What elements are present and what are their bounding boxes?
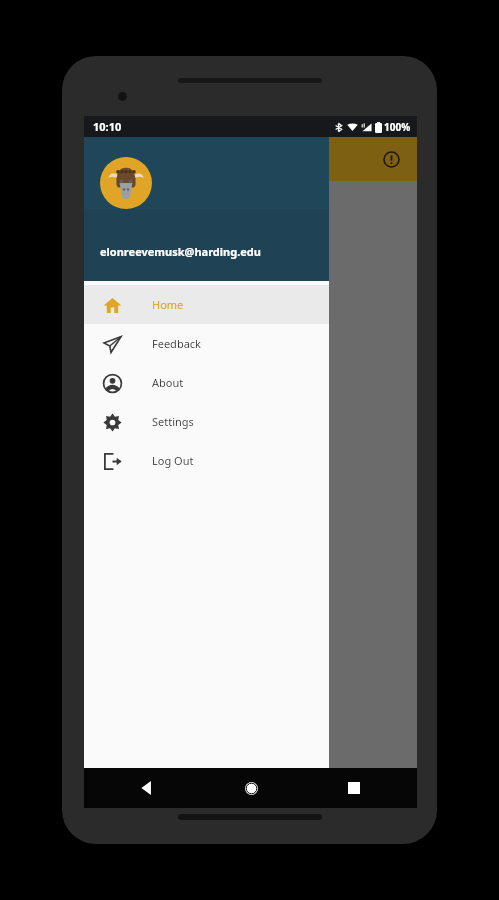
button[interactable]: Recent apps [339, 773, 369, 803]
button[interactable]: Home [84, 285, 329, 324]
staticText: Log Out [152, 453, 194, 468]
staticText: Settings [152, 414, 194, 429]
button[interactable]: Back [132, 773, 162, 803]
staticText: 10:10 [93, 119, 122, 134]
staticText: elonreevemusk@harding.edu [100, 244, 261, 259]
button[interactable]: Alerts [377, 145, 405, 173]
button[interactable]: Profile photo [100, 157, 152, 209]
button[interactable]: Home [236, 773, 266, 803]
staticText: Feedback [152, 336, 201, 351]
staticText: 100% [384, 120, 411, 134]
button[interactable]: About [84, 363, 329, 402]
staticText: About [152, 375, 184, 390]
button[interactable]: Feedback [84, 324, 329, 363]
button[interactable]: Log Out [84, 441, 329, 480]
staticText: Home [152, 297, 184, 312]
button[interactable]: Settings [84, 402, 329, 441]
